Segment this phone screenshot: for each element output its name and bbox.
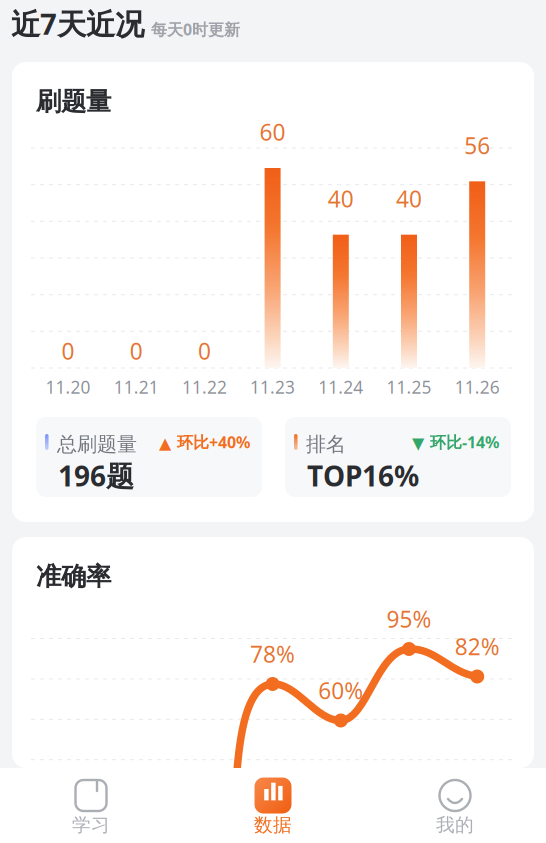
staticText: 近7天近况 [11,4,144,43]
staticText: 95% [386,604,431,634]
staticText: 11.21 [114,375,159,398]
staticText: 数据 [254,813,292,836]
staticText: TOP16% [307,457,419,494]
staticText: 每天0时更新 [151,19,240,40]
staticText: 78% [250,639,295,669]
button[interactable]: 我的 [364,768,546,843]
staticText: 0 [61,336,74,366]
staticText: 刷题量 [36,86,111,117]
staticText: 11.25 [386,375,431,398]
staticText: 学习 [72,813,110,836]
button[interactable]: 学习 [0,768,182,843]
staticText: 11.20 [45,375,90,398]
staticText: 11.23 [250,375,295,398]
staticText: ▼ 环比-14% [412,431,499,453]
button[interactable]: 排名 [285,417,511,497]
button[interactable]: 总刷题量 [36,417,262,497]
staticText: 40 [396,184,422,214]
staticText: 11.26 [455,375,500,398]
staticText: ▲ 环比+40% [159,431,250,453]
staticText: 40 [328,184,354,214]
staticText: 11.22 [182,375,227,398]
staticText: 0 [130,336,143,366]
staticText: 我的 [436,813,474,836]
staticText: 60% [318,675,363,705]
staticText: 56 [464,130,490,160]
staticText: 196题 [58,457,134,494]
staticText: 准确率 [36,561,111,592]
staticText: 排名 [306,432,346,457]
staticText: 60 [260,117,286,147]
staticText: 82% [455,631,500,661]
staticText: 总刷题量 [57,432,137,457]
button[interactable]: 数据 [182,768,364,843]
staticText: 0 [198,336,211,366]
staticText: 11.24 [318,375,363,398]
